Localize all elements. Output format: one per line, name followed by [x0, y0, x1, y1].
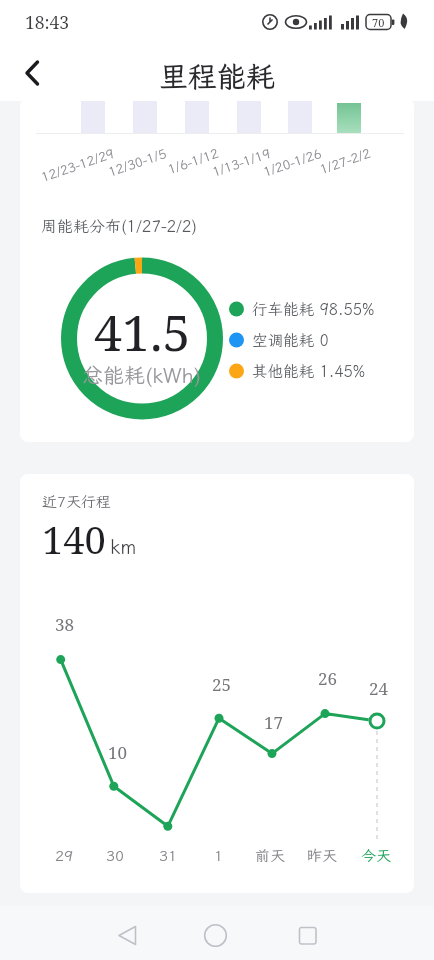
staticText: 总能耗(kWh)	[82, 361, 202, 389]
staticText: 行车能耗 98.55%	[252, 299, 375, 319]
button[interactable]	[280, 910, 334, 960]
staticText: 140	[42, 513, 106, 565]
staticText: 今天	[361, 846, 392, 866]
staticText: 12/30-1/5	[106, 145, 169, 180]
staticText: 17	[264, 711, 284, 733]
button[interactable]	[12, 52, 56, 94]
staticText: 26	[318, 667, 338, 689]
staticText: 里程能耗	[159, 57, 276, 91]
staticText: 24	[369, 677, 389, 699]
staticText: km	[110, 533, 137, 559]
staticText: 其他能耗 1.45%	[252, 361, 366, 381]
staticText: 18:43	[25, 10, 70, 34]
staticText: 昨天	[307, 846, 338, 866]
staticText: 1/13-1/19	[210, 145, 273, 180]
staticText: 25	[212, 673, 232, 695]
staticText: 近7天行程	[42, 492, 112, 512]
staticText: 前天	[255, 846, 286, 866]
staticText: 12/23-12/29	[39, 145, 117, 186]
staticText: 1/27-2/2	[317, 145, 373, 178]
staticText: 周能耗分布(1/27-2/2)	[41, 215, 198, 236]
staticText: 38	[55, 613, 75, 635]
button[interactable]	[100, 910, 154, 960]
staticText: 1	[214, 846, 224, 866]
staticText: 30	[106, 846, 125, 866]
button[interactable]	[189, 910, 243, 960]
staticText: 1/20-1/26	[261, 145, 324, 180]
staticText: 10	[108, 741, 128, 763]
staticText: 1/6-1/12	[165, 145, 221, 178]
staticText: 70	[372, 15, 385, 30]
staticText: 空调能耗 0	[252, 330, 329, 350]
staticText: 31	[159, 846, 178, 866]
staticText: 29	[55, 846, 74, 866]
staticText: 41.5	[94, 298, 191, 358]
